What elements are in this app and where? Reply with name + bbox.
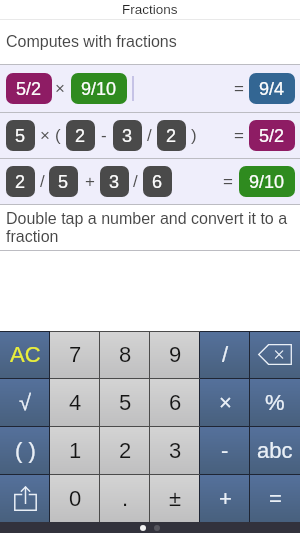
staticText: / xyxy=(222,342,229,367)
button[interactable]: 5 xyxy=(6,120,35,151)
button[interactable]: 5/2 xyxy=(0,65,300,112)
staticText: × xyxy=(55,79,65,98)
staticText: 6 xyxy=(169,390,182,415)
staticText: 3 xyxy=(122,126,133,146)
staticText: = xyxy=(269,486,282,511)
staticText: √ xyxy=(19,390,32,415)
staticText: 9/10 xyxy=(249,172,285,192)
staticText: 5 xyxy=(58,172,69,192)
button[interactable]: 6 xyxy=(150,378,200,426)
other: Backspace xyxy=(258,344,292,365)
button[interactable]: √ xyxy=(0,378,50,426)
button[interactable]: 2 xyxy=(100,426,150,474)
staticText: 9/10 xyxy=(81,79,117,99)
staticText: - xyxy=(221,438,229,463)
staticText: % xyxy=(265,390,285,415)
staticText: × xyxy=(40,126,50,145)
staticText: . xyxy=(122,486,129,511)
button[interactable]: 8 xyxy=(100,331,150,378)
button[interactable]: 3 xyxy=(113,120,142,151)
button[interactable]: Backspace xyxy=(250,331,300,378)
button[interactable]: AC xyxy=(0,331,50,378)
staticText: = xyxy=(234,79,244,98)
button[interactable]: 5 xyxy=(0,113,300,158)
button[interactable]: 5/2 xyxy=(249,120,295,151)
staticText: + xyxy=(85,172,95,191)
staticText: Fractions xyxy=(122,2,178,17)
button[interactable]: 9 xyxy=(150,331,200,378)
button[interactable]: ( ) xyxy=(0,426,50,474)
button[interactable]: 7 xyxy=(50,331,100,378)
staticText: + xyxy=(219,486,232,511)
staticText: ( ) xyxy=(15,438,36,463)
other: Share xyxy=(14,486,37,511)
staticText: / xyxy=(133,172,138,191)
staticText: = xyxy=(234,126,244,145)
button[interactable]: 0 xyxy=(50,474,100,522)
staticText: 9 xyxy=(169,342,182,367)
staticText: × xyxy=(219,390,232,415)
button[interactable]: 3 xyxy=(100,166,129,197)
button[interactable]: 9/10 xyxy=(239,166,295,197)
button[interactable]: × xyxy=(200,378,250,426)
staticText: = xyxy=(223,172,233,191)
staticText: 3 xyxy=(169,438,182,463)
staticText: Double tap a number and convert it to a … xyxy=(6,210,300,245)
button[interactable]: abc xyxy=(250,426,300,474)
button[interactable]: 2 xyxy=(0,159,300,204)
staticText: 4 xyxy=(69,390,82,415)
staticText: 5 xyxy=(15,126,26,146)
staticText: 5 xyxy=(119,390,132,415)
button[interactable]: 5/2 xyxy=(6,73,52,104)
button[interactable]: + xyxy=(200,474,250,522)
button[interactable]: % xyxy=(250,378,300,426)
staticText: ) xyxy=(191,126,197,145)
staticText: 5/2 xyxy=(259,126,285,146)
staticText: ± xyxy=(169,486,182,511)
button[interactable]: - xyxy=(200,426,250,474)
staticText: 2 xyxy=(166,126,177,146)
staticText: 0 xyxy=(69,486,82,511)
button[interactable]: 5 xyxy=(100,378,150,426)
button[interactable]: 5 xyxy=(49,166,78,197)
button[interactable]: . xyxy=(100,474,150,522)
button[interactable]: 6 xyxy=(143,166,172,197)
button[interactable]: 9/4 xyxy=(249,73,295,104)
button[interactable]: 1 xyxy=(50,426,100,474)
staticText: 1 xyxy=(69,438,82,463)
button[interactable]: / xyxy=(200,331,250,378)
button[interactable]: 9/10 xyxy=(71,73,127,104)
button[interactable]: 2 xyxy=(6,166,35,197)
staticText: Computes with fractions xyxy=(6,33,177,51)
staticText: 8 xyxy=(119,342,132,367)
staticText: AC xyxy=(10,342,41,367)
button[interactable]: 4 xyxy=(50,378,100,426)
staticText: 7 xyxy=(69,342,82,367)
button[interactable]: 3 xyxy=(150,426,200,474)
staticText: 3 xyxy=(109,172,120,192)
button[interactable]: 2 xyxy=(157,120,186,151)
staticText: 5/2 xyxy=(16,79,42,99)
button[interactable]: = xyxy=(250,474,300,522)
staticText: 9/4 xyxy=(259,79,285,99)
staticText: 6 xyxy=(152,172,163,192)
button[interactable]: Share xyxy=(0,474,50,522)
staticText: abc xyxy=(257,438,293,463)
staticText: / xyxy=(40,172,45,191)
staticText: - xyxy=(101,126,107,145)
staticText: 2 xyxy=(15,172,26,192)
staticText: / xyxy=(147,126,152,145)
staticText: 2 xyxy=(75,126,86,146)
staticText: ( xyxy=(55,126,61,145)
staticText: 2 xyxy=(119,438,132,463)
button[interactable]: 2 xyxy=(66,120,95,151)
button[interactable]: ± xyxy=(150,474,200,522)
